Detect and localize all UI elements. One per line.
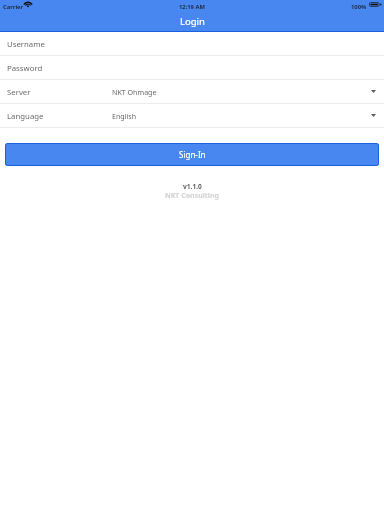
staticText: Server [7, 87, 31, 98]
button[interactable]: Sign-In [5, 143, 379, 166]
other: Wi-Fi signal [25, 2, 31, 7]
staticText: Sign-In [179, 149, 206, 160]
button[interactable]: Language [0, 104, 384, 128]
button[interactable]: Server [0, 80, 384, 104]
staticText: English [112, 111, 137, 121]
other: Battery 100 percent [369, 2, 382, 7]
button[interactable]: Password [0, 56, 384, 80]
staticText: 100% [351, 3, 367, 11]
staticText: Login [180, 15, 205, 28]
button[interactable]: Username [0, 32, 384, 56]
staticText: Username [7, 39, 45, 50]
staticText: NKT Ohmage [112, 87, 157, 97]
staticText: NKT Consulting [165, 191, 219, 201]
staticText: Carrier [3, 3, 24, 11]
staticText: Password [7, 63, 43, 74]
staticText: Language [7, 111, 44, 122]
staticText: v1.1.0 [183, 182, 202, 191]
staticText: 12:19 AM [179, 3, 205, 11]
